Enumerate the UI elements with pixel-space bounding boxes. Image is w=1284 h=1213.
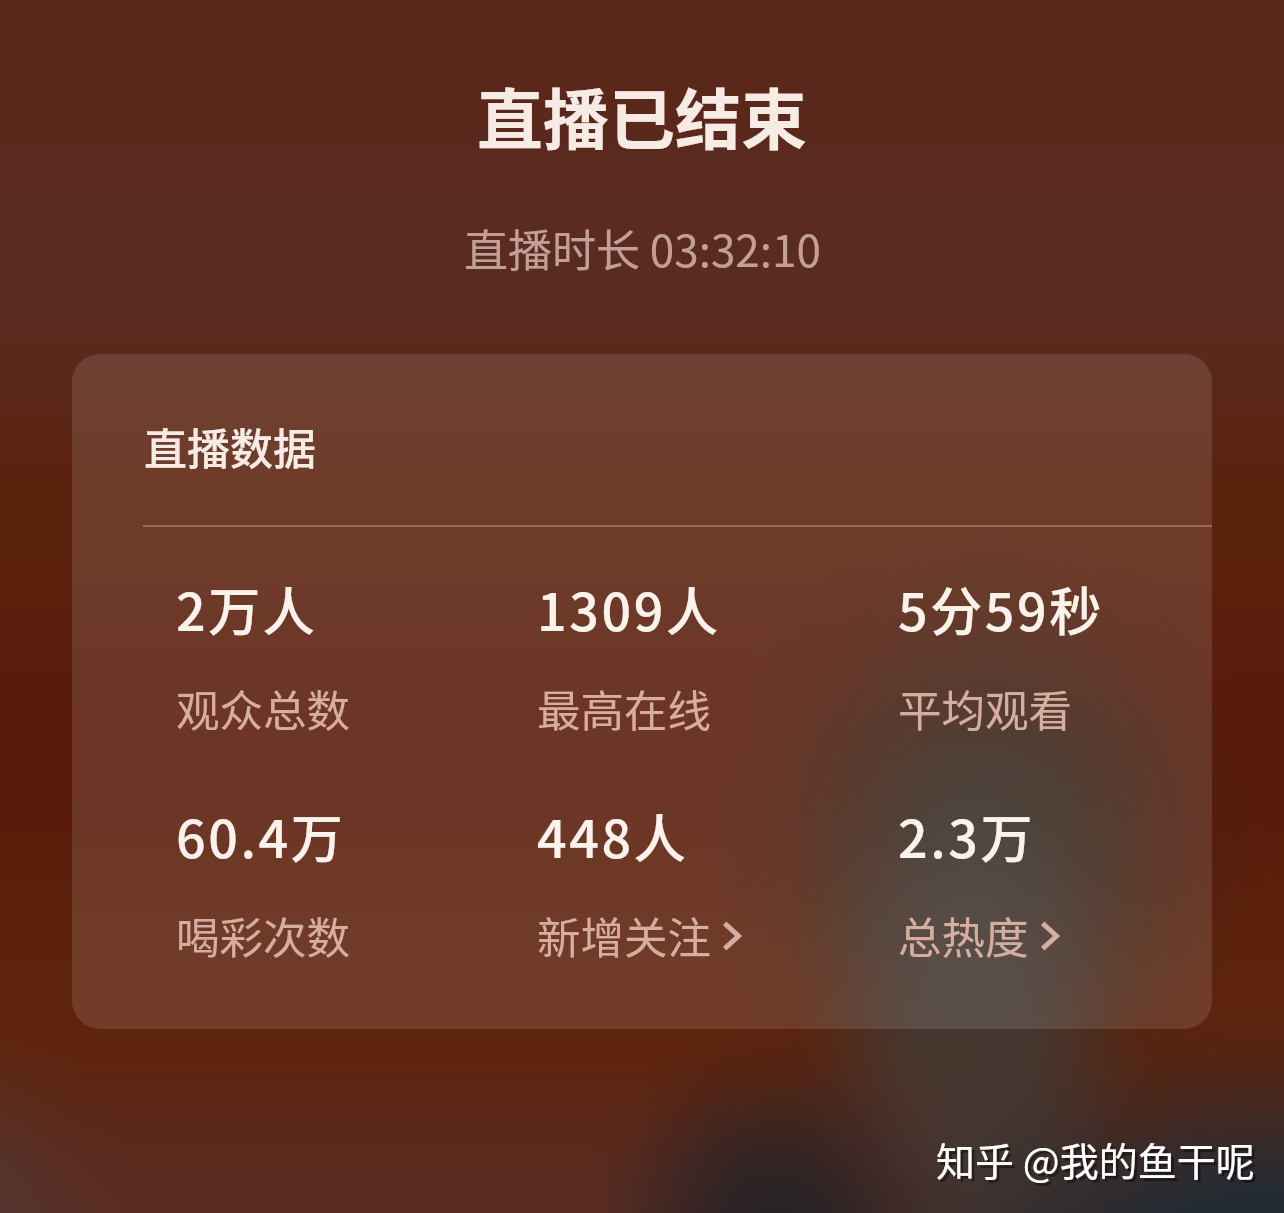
staticText: 直播已结束 [477, 67, 807, 163]
button[interactable]: 60.4万 [176, 798, 537, 967]
other: 查看新增关注详情 [725, 923, 740, 949]
staticText: 2.3万 [898, 798, 1036, 873]
staticText: 总热度 [898, 904, 1029, 967]
staticText: 448人 [537, 798, 689, 873]
button[interactable]: 2.3万 [898, 798, 1212, 967]
button[interactable]: 1309人 [537, 571, 898, 740]
staticText: 观众总数 [176, 677, 350, 740]
staticText: 新增关注 [537, 904, 711, 967]
staticText: 2万人 [176, 571, 318, 646]
staticText: 直播数据 [144, 415, 316, 477]
button[interactable]: 448人 [537, 798, 898, 967]
staticText: 知乎 @我的鱼干呢 [936, 1131, 1255, 1187]
other: 查看总热度详情 [1043, 923, 1058, 949]
staticText: 直播时长 03:32:10 [464, 216, 821, 280]
button[interactable]: 5分59秒 [898, 571, 1212, 740]
staticText: 1309人 [537, 571, 721, 646]
staticText: 最高在线 [537, 677, 711, 740]
staticText: 5分59秒 [898, 571, 1104, 646]
staticText: 喝彩次数 [176, 904, 350, 967]
staticText: 知乎 @我的鱼干呢 [939, 1134, 1258, 1190]
staticText: 60.4万 [176, 798, 346, 873]
staticText: 平均观看 [898, 677, 1072, 740]
button[interactable]: 2万人 [176, 571, 537, 740]
